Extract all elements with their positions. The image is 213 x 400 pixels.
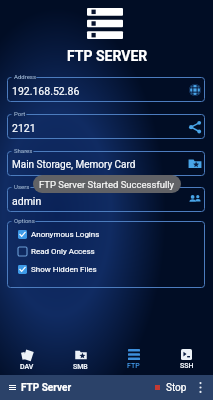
button[interactable]: admin	[7, 187, 205, 212]
staticText: FTP Server	[21, 382, 72, 394]
button[interactable]: DAV	[0, 341, 54, 375]
staticText: FTP	[127, 362, 140, 370]
staticText: FTP SERVER	[67, 48, 148, 64]
staticText: Stop	[166, 382, 187, 394]
button[interactable]: Share	[188, 120, 202, 134]
button[interactable]: Main Storage, Memory Card	[7, 151, 205, 176]
button[interactable]: FTP	[107, 341, 160, 375]
button[interactable]: Read Only Access	[18, 244, 138, 258]
staticText: 192.168.52.86	[12, 85, 80, 97]
staticText: Address	[14, 73, 37, 80]
button[interactable]: 192.168.52.86	[7, 77, 205, 102]
staticText: Shares	[14, 147, 33, 154]
staticText: 2121	[12, 122, 36, 134]
button[interactable]: SSH	[160, 341, 213, 375]
button[interactable]: More options	[195, 381, 206, 394]
button[interactable]: Network address	[188, 83, 202, 97]
button[interactable]: 2121	[7, 114, 205, 139]
staticText: Port	[14, 110, 26, 117]
button[interactable]: Menu	[9, 385, 16, 390]
staticText: SMB	[73, 363, 88, 371]
button[interactable]: Show Hidden Files	[18, 262, 138, 276]
staticText: DAV	[20, 363, 34, 371]
staticText: Anonymous Logins	[31, 230, 100, 239]
button[interactable]: Users	[188, 193, 202, 207]
staticText: Main Storage, Memory Card	[12, 159, 136, 171]
staticText: Options	[14, 217, 35, 224]
staticText: Read Only Access	[31, 247, 95, 256]
staticText: Show Hidden Files	[31, 265, 97, 274]
button[interactable]: SMB	[54, 341, 107, 375]
staticText: admin	[12, 195, 42, 207]
button[interactable]: Anonymous Logins	[18, 227, 138, 241]
staticText: FTP Server Started Successfully	[39, 179, 175, 190]
staticText: SSH	[180, 362, 194, 370]
button[interactable]: Choose shared folders	[188, 157, 202, 171]
button[interactable]: Stop	[155, 379, 187, 396]
staticText: Users	[14, 183, 30, 190]
